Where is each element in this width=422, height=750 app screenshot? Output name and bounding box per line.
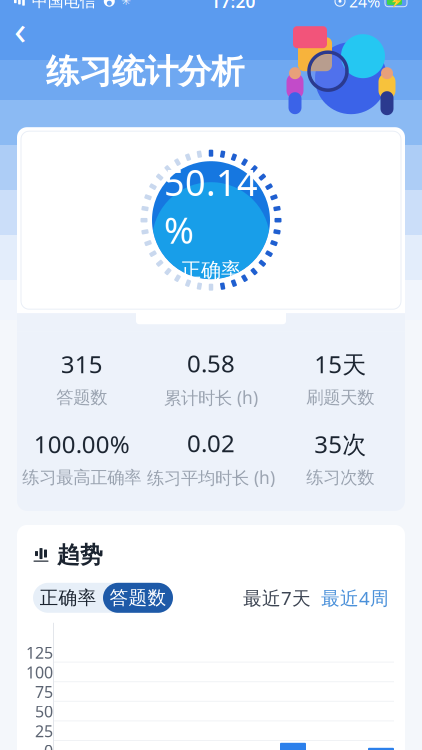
- staticText: 100.00%: [34, 428, 130, 460]
- staticText: 35次: [314, 428, 366, 460]
- staticText: 50.14%: [164, 158, 258, 254]
- staticText: 答题数: [109, 586, 166, 609]
- staticText: ✳: [121, 0, 131, 8]
- staticText: 中国电信: [32, 0, 96, 11]
- staticText: 0.58: [187, 347, 235, 379]
- staticText: 17:20: [210, 0, 255, 13]
- staticText: 练习平均时长 (h): [147, 466, 275, 489]
- staticText: 最近7天: [243, 585, 311, 610]
- staticText: 50: [35, 701, 53, 722]
- button[interactable]: 正确率: [33, 583, 103, 613]
- staticText: 答题数: [56, 387, 107, 408]
- staticText: 25: [35, 720, 53, 742]
- staticText: 0: [44, 740, 53, 750]
- staticText: 0.02: [187, 427, 235, 459]
- staticText: 100: [26, 662, 53, 683]
- staticText: 正确率: [39, 586, 96, 609]
- staticText: 累计时长 (h): [164, 386, 258, 409]
- staticText: 15天: [314, 348, 366, 380]
- staticText: 最近4周: [321, 585, 389, 610]
- staticText: 练习统计分析: [46, 51, 244, 92]
- staticText: ⚡: [389, 0, 402, 7]
- staticText: 练习次数: [306, 467, 374, 488]
- staticText: 练习最高正确率: [22, 467, 141, 488]
- staticText: ‹: [14, 3, 26, 56]
- staticText: 75: [35, 681, 53, 702]
- button[interactable]: 最近7天: [243, 585, 311, 610]
- button[interactable]: 返回: [0, 13, 54, 45]
- staticText: 125: [26, 642, 53, 663]
- button[interactable]: 最近4周: [311, 585, 389, 610]
- staticText: 趋势: [57, 541, 103, 569]
- staticText: 315: [61, 348, 103, 380]
- button[interactable]: 答题数: [103, 583, 173, 613]
- staticText: 刷题天数: [306, 387, 374, 408]
- staticText: 正确率: [181, 258, 241, 282]
- staticText: 24%: [349, 0, 380, 12]
